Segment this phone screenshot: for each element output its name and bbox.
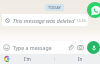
button[interactable]: Voice message: [87, 41, 100, 54]
button[interactable]: TODAY: [45, 4, 64, 11]
button[interactable]: WhatsApp chat bubble: [87, 2, 100, 18]
button[interactable]: In: [66, 54, 94, 64]
staticText: In: [78, 56, 83, 62]
staticText: This message was deleted: [10, 17, 75, 24]
staticText: Type a message: [10, 44, 52, 51]
button[interactable]: Google search: [1, 54, 12, 64]
button[interactable]: Type a message: [1, 41, 86, 53]
button[interactable]: I'm: [12, 54, 42, 64]
button[interactable]: This message was deleted: [2, 14, 88, 26]
other: Camera: [77, 44, 84, 51]
staticText: TODAY: [48, 5, 61, 10]
staticText: I'm: [24, 56, 31, 62]
staticText: 12:26: [76, 18, 86, 23]
other: Attach: [67, 44, 74, 51]
